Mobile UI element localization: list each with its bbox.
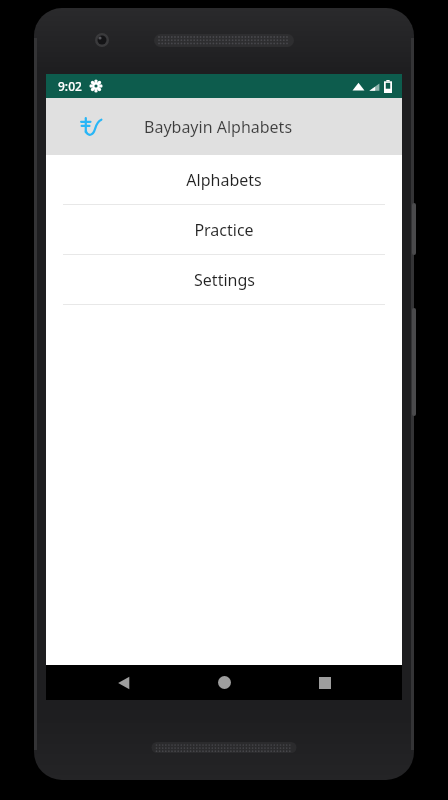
other: Baybayin logo (76, 112, 106, 142)
staticText: 9:02 (58, 78, 82, 94)
staticText: Settings (194, 269, 255, 291)
staticText: Practice (194, 219, 254, 241)
button[interactable]: Home (201, 665, 247, 700)
button[interactable]: Back (101, 665, 147, 700)
button[interactable]: Recent apps (302, 665, 348, 700)
button[interactable]: Practice (46, 205, 402, 254)
button[interactable]: Alphabets (46, 155, 402, 204)
button[interactable]: Settings (46, 255, 402, 304)
staticText: Baybayin Alphabets (144, 116, 293, 138)
staticText: Alphabets (186, 169, 262, 191)
